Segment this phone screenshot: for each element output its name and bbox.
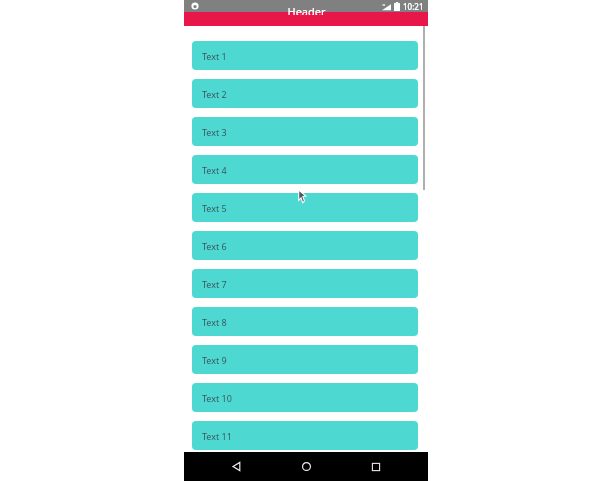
staticText: Text 1: [202, 50, 227, 62]
staticText: Text 4: [202, 164, 227, 176]
staticText: Text 10: [202, 392, 232, 404]
button[interactable]: Text 1: [192, 41, 418, 70]
button[interactable]: Text 11: [192, 421, 418, 450]
staticText: Text 6: [202, 240, 227, 252]
staticText: Text 11: [202, 430, 232, 442]
button[interactable]: [184, 12, 428, 26]
button[interactable]: Recent apps: [358, 452, 394, 481]
button[interactable]: Home: [288, 452, 324, 481]
button[interactable]: Text 8: [192, 307, 418, 336]
button[interactable]: Text 3: [192, 117, 418, 146]
staticText: Text 8: [202, 316, 227, 328]
staticText: Text 3: [202, 126, 227, 138]
button[interactable]: Text 10: [192, 383, 418, 412]
button[interactable]: Text 2: [192, 79, 418, 108]
staticText: 10:21: [403, 1, 424, 12]
staticText: Text 7: [202, 278, 227, 290]
button[interactable]: Text 7: [192, 269, 418, 298]
staticText: Text 5: [202, 202, 227, 214]
button[interactable]: Text 4: [192, 155, 418, 184]
button[interactable]: Back: [218, 452, 254, 481]
staticText: Header: [287, 4, 326, 15]
button[interactable]: Text 5: [192, 193, 418, 222]
staticText: Text 2: [202, 88, 227, 100]
staticText: Text 9: [202, 354, 227, 366]
button[interactable]: Text 9: [192, 345, 418, 374]
button[interactable]: Text 6: [192, 231, 418, 260]
